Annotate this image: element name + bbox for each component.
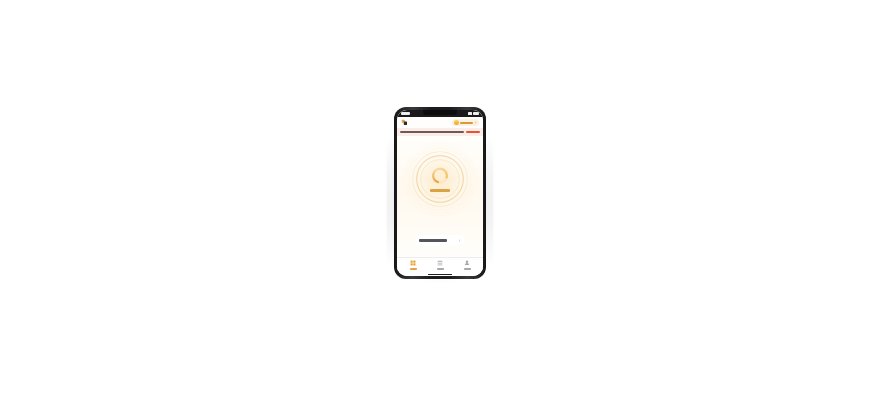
button[interactable]: Home xyxy=(402,258,424,272)
button[interactable] xyxy=(452,119,479,126)
button[interactable] xyxy=(397,128,483,136)
button[interactable] xyxy=(415,235,465,245)
button[interactable]: App logo xyxy=(401,119,408,126)
button[interactable]: Discover xyxy=(429,258,451,272)
button[interactable]: Profile xyxy=(456,258,478,272)
